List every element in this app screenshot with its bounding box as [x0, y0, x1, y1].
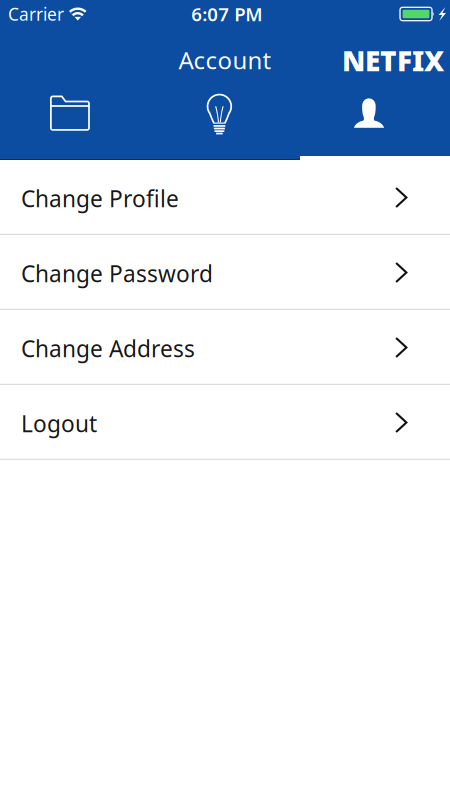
staticText: Carrier	[8, 2, 64, 25]
button[interactable]: Discover	[150, 74, 300, 156]
staticText: NETFIX	[342, 42, 444, 79]
staticText: Change Profile	[21, 183, 179, 213]
staticText: Change Password	[21, 258, 213, 288]
button[interactable]: Change Password	[0, 235, 450, 310]
button[interactable]: Logout	[0, 385, 450, 460]
button[interactable]: Account	[300, 74, 450, 156]
staticText: Account	[178, 44, 271, 76]
button[interactable]: Change Profile	[0, 160, 450, 235]
staticText: Change Address	[21, 333, 195, 363]
staticText: 6:07 PM	[191, 2, 262, 26]
button[interactable]: Library	[0, 74, 150, 156]
staticText: Logout	[21, 408, 97, 438]
button[interactable]: Change Address	[0, 310, 450, 385]
button[interactable]: NETFIX	[342, 42, 450, 79]
